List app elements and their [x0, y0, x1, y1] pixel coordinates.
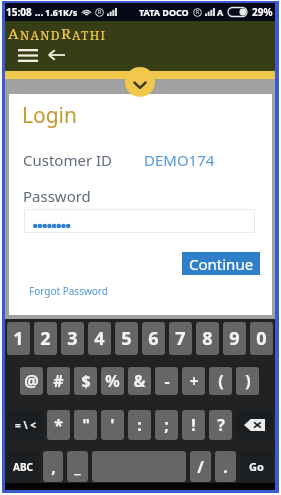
staticText: Continue: [189, 254, 254, 274]
button[interactable]: 0: [250, 322, 273, 355]
button[interactable]: Back: [44, 44, 68, 66]
staticText: 0: [256, 326, 267, 351]
button[interactable]: (: [209, 367, 232, 395]
staticText: TATA DOCO: [139, 6, 189, 18]
button[interactable]: Expand: [125, 67, 155, 97]
button[interactable]: Menu: [16, 44, 40, 66]
staticText: ": [82, 414, 90, 436]
staticText: ,: [51, 456, 56, 478]
button[interactable]: ': [101, 410, 124, 440]
staticText: *: [54, 414, 63, 436]
button[interactable]: @: [20, 367, 43, 395]
staticText: :: [137, 414, 142, 436]
button[interactable]: #: [47, 367, 70, 395]
staticText: (: [218, 370, 224, 392]
staticText: .: [223, 456, 228, 478]
staticText: 9: [229, 326, 240, 351]
button[interactable]: -: [155, 367, 178, 395]
staticText: 3: [67, 326, 78, 351]
staticText: Go: [249, 459, 264, 474]
button[interactable]: = \ <: [7, 410, 43, 440]
staticText: 8: [202, 326, 213, 351]
staticText: /: [197, 456, 204, 478]
staticText: 29%: [252, 5, 273, 19]
button[interactable]: Forgot Password: [29, 284, 108, 298]
button[interactable]: 1: [7, 322, 30, 355]
button[interactable]: ;: [155, 410, 178, 440]
staticText: A: [217, 6, 224, 18]
staticText: Password: [23, 186, 91, 206]
staticText: R: [98, 9, 102, 16]
staticText: _: [74, 456, 81, 478]
button[interactable]: 8: [196, 322, 219, 355]
button[interactable]: +: [182, 367, 205, 395]
button[interactable]: *: [47, 410, 70, 440]
button[interactable]: /: [190, 451, 211, 482]
staticText: NAND: [20, 27, 61, 43]
button[interactable]: [24, 209, 255, 233]
staticText: 4: [94, 326, 105, 351]
button[interactable]: %: [101, 367, 124, 395]
button[interactable]: Continue: [182, 252, 260, 275]
staticText: +: [189, 370, 199, 392]
staticText: ': [110, 414, 115, 436]
button[interactable]: .: [215, 451, 236, 482]
staticText: 5: [121, 326, 132, 351]
staticText: ): [245, 370, 251, 392]
staticText: = \ <: [15, 418, 36, 432]
button[interactable]: 9: [223, 322, 246, 355]
staticText: $: [81, 370, 91, 392]
button[interactable]: 7: [169, 322, 192, 355]
button[interactable]: ): [236, 367, 259, 395]
staticText: 6: [148, 326, 159, 351]
staticText: A: [8, 23, 20, 43]
button[interactable]: !: [182, 410, 205, 440]
staticText: R: [61, 23, 72, 43]
button[interactable]: 4: [88, 322, 111, 355]
staticText: #: [53, 370, 64, 392]
button[interactable]: ,: [43, 451, 63, 482]
staticText: ;: [164, 414, 169, 436]
staticText: Login: [22, 101, 78, 130]
staticText: 1.61K/s: [45, 6, 78, 18]
staticText: 7: [175, 326, 186, 351]
staticText: @: [24, 370, 39, 392]
staticText: !: [191, 414, 196, 436]
button[interactable]: 3: [61, 322, 84, 355]
staticText: ABC: [13, 460, 33, 474]
staticText: 2: [40, 326, 51, 351]
staticText: &: [133, 370, 146, 392]
staticText: ATHI: [72, 27, 107, 43]
staticText: 1: [13, 326, 24, 351]
staticText: DEMO174: [144, 150, 215, 170]
button[interactable]: $: [74, 367, 97, 395]
staticText: 15:08: [6, 5, 32, 19]
button[interactable]: :: [128, 410, 151, 440]
button[interactable]: Go: [240, 451, 273, 482]
button[interactable]: &: [128, 367, 151, 395]
button[interactable]: 2: [34, 322, 57, 355]
staticText: ?: [217, 414, 225, 436]
button[interactable]: 5: [115, 322, 138, 355]
button[interactable]: ?: [209, 410, 232, 440]
staticText: ...: [35, 5, 44, 19]
button[interactable]: ": [74, 410, 97, 440]
staticText: -: [164, 370, 170, 392]
button[interactable]: ABC: [7, 451, 39, 482]
staticText: R: [196, 9, 200, 16]
button[interactable]: Backspace: [236, 410, 273, 440]
staticText: Customer ID: [23, 150, 113, 170]
staticText: %: [105, 370, 120, 392]
button[interactable]: 6: [142, 322, 165, 355]
button[interactable]: _: [67, 451, 88, 482]
